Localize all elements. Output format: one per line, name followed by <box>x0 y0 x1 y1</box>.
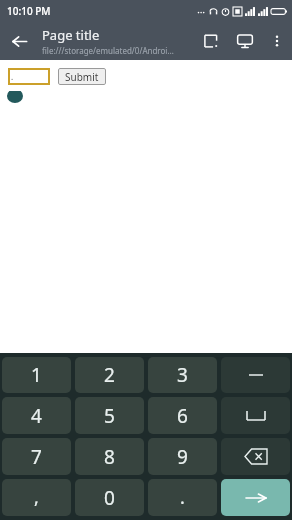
staticText: 7 <box>31 444 42 470</box>
button[interactable]: . <box>148 479 217 516</box>
staticText: 1 <box>31 362 42 388</box>
button[interactable]: . <box>8 68 50 85</box>
button[interactable]: More options <box>262 26 292 56</box>
button[interactable]: Minus <box>221 357 290 393</box>
staticText: 3 <box>177 362 188 388</box>
staticText: file:///storage/emulated/0/Androi… <box>42 45 174 56</box>
button[interactable]: Backspace <box>221 438 290 475</box>
button[interactable]: 8 <box>75 438 144 475</box>
staticText: 0 <box>104 485 115 511</box>
button[interactable]: 9 <box>148 438 217 475</box>
staticText: 6 <box>177 403 188 429</box>
button[interactable]: 4 <box>2 397 71 434</box>
staticText: 8 <box>104 444 115 470</box>
staticText: 10:10 PM <box>7 4 51 18</box>
button[interactable]: Enter <box>221 479 290 516</box>
button[interactable]: 1 <box>2 357 71 393</box>
staticText: 2 <box>104 362 115 388</box>
staticText: , <box>34 485 39 510</box>
button[interactable]: 2 <box>75 357 144 393</box>
staticText: 4 <box>31 403 42 429</box>
button[interactable]: Submit <box>58 68 106 85</box>
button[interactable]: , <box>2 479 71 516</box>
button[interactable]: 7 <box>2 438 71 475</box>
button[interactable]: Back <box>0 22 38 60</box>
button[interactable]: Capture <box>194 24 228 58</box>
button[interactable]: 0 <box>75 479 144 516</box>
staticText: Submit <box>65 70 99 84</box>
button[interactable]: 5 <box>75 397 144 434</box>
button[interactable]: 6 <box>148 397 217 434</box>
staticText: . <box>180 485 185 510</box>
button[interactable]: 3 <box>148 357 217 393</box>
staticText: Page title <box>42 26 100 44</box>
staticText: 5 <box>104 403 115 429</box>
button[interactable]: Desktop view <box>228 24 262 58</box>
button[interactable]: Space <box>221 397 290 434</box>
staticText: . <box>11 71 14 82</box>
staticText: 9 <box>177 444 188 470</box>
